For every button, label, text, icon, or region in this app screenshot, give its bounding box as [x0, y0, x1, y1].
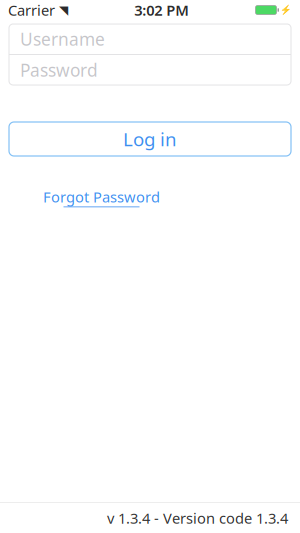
staticText: ⚡ — [280, 5, 292, 15]
staticText: v 1.3.4 - Version code 1.3.4 — [107, 508, 288, 528]
button[interactable]: Log in — [9, 122, 291, 156]
staticText: Forgot Password — [43, 187, 160, 206]
button[interactable]: Forgot Password — [43, 183, 160, 211]
staticText: Username — [20, 27, 105, 50]
staticText: Password — [20, 58, 98, 81]
staticText: Carrier — [8, 0, 55, 20]
staticText: ◥ — [59, 3, 68, 17]
staticText: 3:02 PM — [134, 0, 189, 20]
staticText: Log in — [123, 127, 177, 151]
